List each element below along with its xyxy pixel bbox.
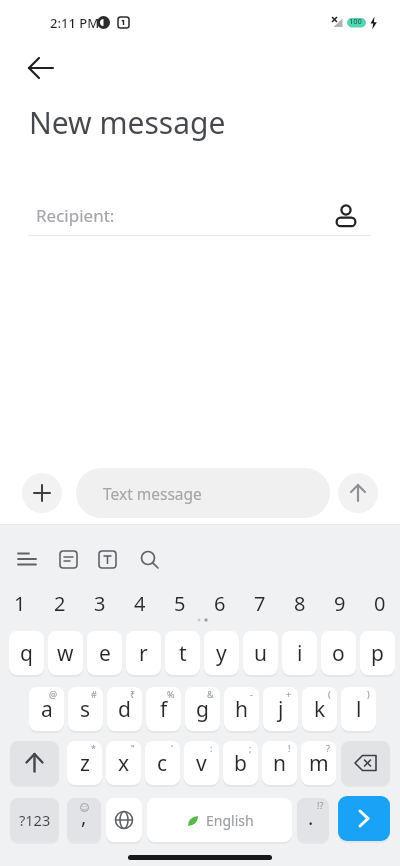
staticText: t: [179, 639, 187, 668]
staticText: -: [250, 688, 253, 700]
button[interactable]: [97, 548, 121, 574]
staticText: f: [160, 695, 168, 724]
button[interactable]: [341, 741, 390, 785]
button[interactable]: 0: [366, 590, 394, 616]
staticText: !: [288, 742, 291, 754]
staticText: ₹: [130, 688, 136, 700]
button[interactable]: r: [126, 631, 161, 675]
staticText: l: [356, 695, 362, 724]
button[interactable]: Recipient:: [28, 196, 372, 236]
button[interactable]: 5: [166, 590, 194, 616]
staticText: m: [309, 749, 329, 778]
staticText: 7: [254, 590, 266, 616]
button[interactable]: m: [301, 741, 336, 785]
button[interactable]: c: [145, 741, 180, 785]
staticText: +: [286, 688, 292, 700]
staticText: z: [80, 749, 90, 778]
staticText: u: [254, 639, 267, 668]
staticText: k: [314, 695, 326, 724]
button[interactable]: y: [204, 631, 239, 675]
button[interactable]: x: [106, 741, 141, 785]
button[interactable]: [106, 798, 142, 842]
button[interactable]: k: [302, 687, 337, 731]
staticText: !?: [317, 799, 324, 811]
staticText: @: [49, 688, 58, 700]
button[interactable]: 6: [206, 590, 234, 616]
staticText: Recipient:: [36, 204, 115, 227]
staticText: *: [91, 742, 96, 754]
button[interactable]: [138, 548, 164, 574]
staticText: b: [234, 749, 247, 778]
button[interactable]: w: [48, 631, 83, 675]
staticText: #: [91, 688, 97, 700]
staticText: a: [41, 695, 53, 724]
button[interactable]: p: [360, 631, 395, 675]
button[interactable]: n: [262, 741, 297, 785]
staticText: y: [216, 639, 227, 668]
button[interactable]: [22, 473, 62, 513]
button[interactable]: b: [223, 741, 258, 785]
button[interactable]: 3: [86, 590, 114, 616]
button[interactable]: [338, 473, 378, 513]
staticText: ': [171, 742, 174, 754]
staticText: ?: [326, 742, 330, 754]
staticText: ?123: [19, 810, 51, 830]
button[interactable]: [14, 548, 42, 574]
button[interactable]: f: [146, 687, 181, 731]
staticText: c: [157, 749, 168, 778]
button[interactable]: u: [243, 631, 278, 675]
button[interactable]: 8: [286, 590, 314, 616]
button[interactable]: e: [87, 631, 122, 675]
button[interactable]: ?123: [10, 798, 59, 842]
button[interactable]: [24, 52, 58, 84]
button[interactable]: j: [263, 687, 298, 731]
button[interactable]: English: [147, 798, 292, 842]
staticText: e: [99, 639, 111, 668]
staticText: j: [278, 695, 284, 724]
button[interactable]: q: [9, 631, 44, 675]
button[interactable]: t: [165, 631, 200, 675]
button[interactable]: Text message: [76, 468, 330, 518]
button[interactable]: v: [184, 741, 219, 785]
button[interactable]: 1: [6, 590, 34, 616]
button[interactable]: i: [282, 631, 317, 675]
button[interactable]: s: [68, 687, 103, 731]
button[interactable]: [58, 548, 82, 574]
staticText: 9: [334, 590, 346, 616]
staticText: 2: [54, 590, 66, 616]
staticText: s: [80, 695, 91, 724]
staticText: d: [118, 695, 131, 724]
button[interactable]: z: [67, 741, 102, 785]
button[interactable]: 9: [326, 590, 354, 616]
staticText: q: [20, 639, 33, 668]
staticText: 2:11 PM: [50, 14, 100, 32]
staticText: 4: [134, 590, 146, 616]
button[interactable]: l: [341, 687, 376, 731]
button[interactable]: .: [297, 798, 329, 842]
button[interactable]: 2: [46, 590, 74, 616]
button[interactable]: ,: [67, 798, 101, 842]
staticText: p: [371, 639, 384, 668]
staticText: o: [332, 639, 345, 668]
button[interactable]: d: [107, 687, 142, 731]
staticText: .: [308, 804, 314, 831]
button[interactable]: g: [185, 687, 220, 731]
button[interactable]: 7: [246, 590, 274, 616]
staticText: New message: [29, 102, 226, 143]
staticText: :: [210, 742, 213, 754]
staticText: x: [118, 749, 130, 778]
staticText: %: [167, 688, 175, 700]
staticText: 6: [214, 590, 226, 616]
staticText: ;: [249, 742, 252, 754]
staticText: n: [273, 749, 286, 778]
staticText: 1: [14, 590, 26, 616]
button[interactable]: 4: [126, 590, 154, 616]
staticText: Text message: [103, 483, 202, 504]
button[interactable]: a: [29, 687, 64, 731]
staticText: 100: [349, 16, 362, 26]
button[interactable]: o: [321, 631, 356, 675]
button[interactable]: [338, 796, 390, 841]
staticText: 0: [374, 590, 386, 616]
button[interactable]: h: [224, 687, 259, 731]
button[interactable]: [10, 741, 59, 785]
